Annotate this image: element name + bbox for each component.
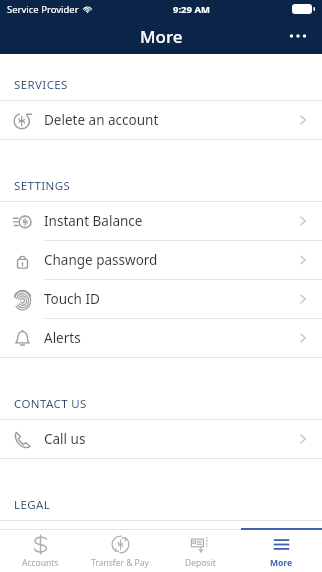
staticText: Instant Balance — [44, 212, 143, 230]
staticText: Change password — [44, 251, 158, 269]
button[interactable]: More options — [281, 19, 315, 53]
button[interactable]: Accounts — [0, 530, 80, 572]
staticText: More — [140, 25, 183, 48]
staticText: Service Provider — [7, 3, 79, 16]
staticText: LEGAL — [14, 497, 51, 513]
staticText: CONTACT US — [14, 396, 87, 412]
staticText: SERVICES — [14, 77, 68, 93]
button[interactable]: Touch ID — [0, 280, 322, 318]
staticText: Delete an account — [44, 111, 159, 129]
button[interactable]: More — [241, 530, 322, 572]
staticText: More — [270, 557, 293, 569]
staticText: Deposit — [185, 557, 216, 569]
button[interactable]: Change password — [0, 241, 322, 279]
staticText: Alerts — [44, 329, 81, 347]
button[interactable]: Call us — [0, 420, 322, 458]
button[interactable]: Transfer & Pay — [80, 530, 160, 572]
staticText: 9:29 AM — [173, 3, 210, 16]
staticText: Touch ID — [44, 290, 100, 308]
button[interactable]: Alerts — [0, 319, 322, 357]
staticText: Accounts — [22, 557, 59, 569]
button[interactable]: Deposit — [160, 530, 241, 572]
button[interactable]: Delete an account — [0, 101, 322, 139]
staticText: SETTINGS — [14, 178, 71, 194]
staticText: Transfer & Pay — [91, 557, 149, 569]
staticText: Call us — [44, 430, 86, 448]
button[interactable]: Instant Balance — [0, 202, 322, 240]
